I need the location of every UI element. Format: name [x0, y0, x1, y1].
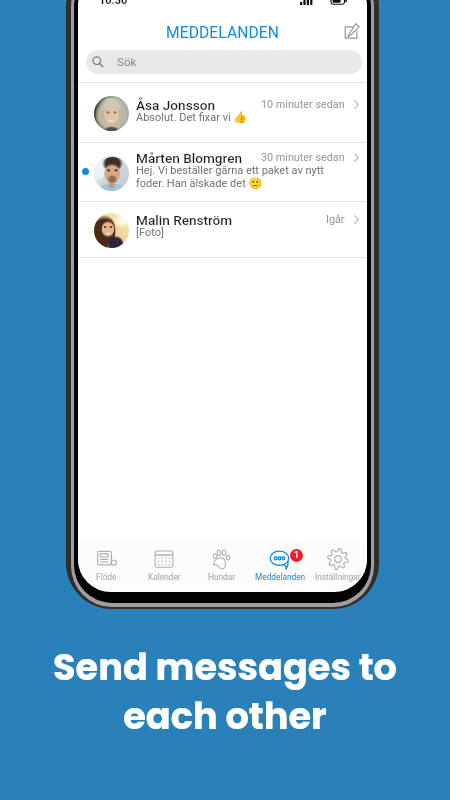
staticText: Kalender: [148, 572, 181, 582]
button[interactable]: Flöde: [78, 540, 135, 591]
staticText: 1: [294, 550, 300, 561]
staticText: Malin Renström: [136, 212, 233, 228]
button[interactable]: Inställningar: [309, 540, 367, 591]
staticText: Mårten Blomgren: [136, 150, 242, 166]
button[interactable]: Hundar: [193, 540, 251, 591]
button[interactable]: 1: [251, 540, 309, 591]
staticText: [Foto]: [136, 226, 356, 239]
staticText: Hej. Vi beställer gärna ett paket av nyt…: [136, 164, 356, 190]
staticText: Flöde: [96, 572, 117, 582]
button[interactable]: Kalender: [135, 540, 193, 591]
staticText: Absolut. Det fixar vi 👍: [136, 111, 356, 124]
staticText: Meddelanden: [255, 572, 306, 582]
staticText: 10 minuter sedan: [261, 98, 345, 111]
button[interactable]: Sök: [86, 50, 362, 74]
staticText: Igår: [326, 213, 345, 226]
staticText: Åsa Jonsson: [136, 97, 216, 113]
button[interactable]: Compose new message: [339, 18, 365, 44]
staticText: 10:30: [99, 0, 128, 7]
button[interactable]: Malin Renström: [78, 201, 367, 257]
staticText: Inställningar: [315, 572, 361, 582]
button[interactable]: Åsa Jonsson: [78, 82, 367, 142]
staticText: MEDDELANDEN: [166, 24, 279, 42]
button[interactable]: Mårten Blomgren: [78, 142, 367, 202]
staticText: Sök: [117, 55, 137, 69]
staticText: Send messages to each other: [0, 641, 450, 742]
staticText: 30 minuter sedan: [261, 151, 345, 164]
staticText: Hundar: [208, 572, 236, 582]
